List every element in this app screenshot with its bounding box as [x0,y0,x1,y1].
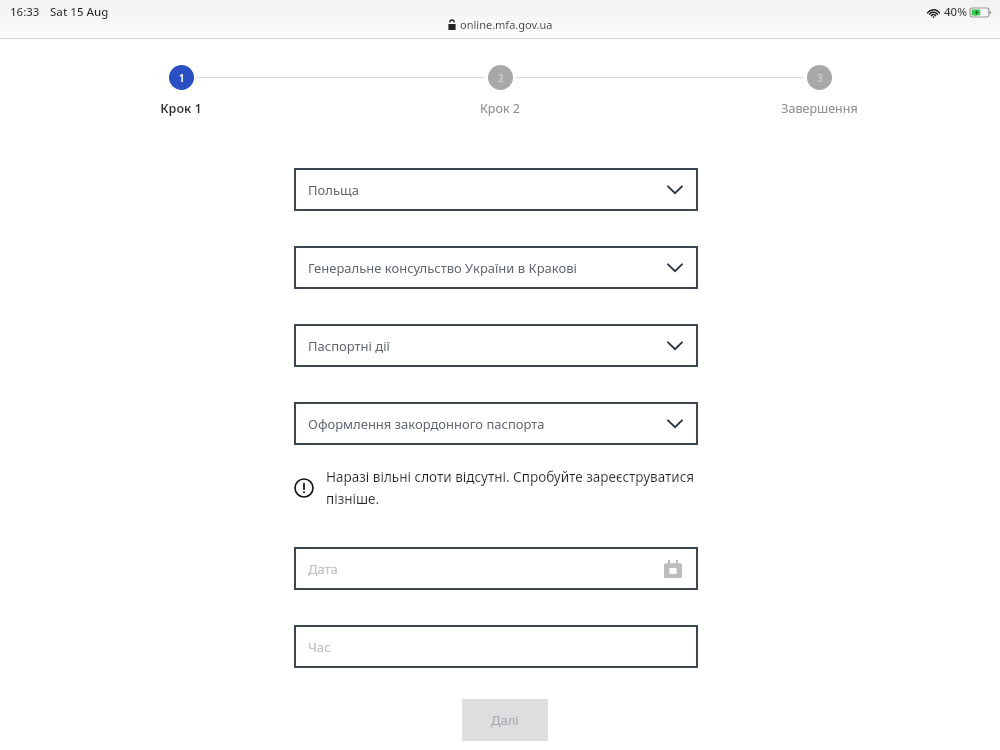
button[interactable]: 2 [440,65,560,117]
staticText: 1 [179,71,185,85]
staticText: Час [308,638,331,656]
staticText: Генеральне консульство України в Кракові [308,259,577,277]
staticText: Наразі вільні слоти відсутні. Спробуйте … [326,468,694,486]
staticText: 16:33 [10,4,40,20]
staticText: пізніше. [326,490,380,508]
staticText: Паспортні дії [308,337,390,355]
button[interactable]: Час [294,625,698,668]
button[interactable]: Дата [294,547,698,590]
staticText: Крок 1 [160,100,202,117]
staticText: Дата [308,560,338,578]
staticText: Польща [308,181,359,199]
button[interactable]: Польща [294,168,698,211]
button[interactable]: Далі [462,699,548,741]
staticText: Далі [491,711,519,729]
staticText: Sat 15 Aug [50,4,109,20]
button[interactable]: Паспортні дії [294,324,698,367]
staticText: online.mfa.gov.ua [460,17,553,32]
button[interactable]: Оформлення закордонного паспорта [294,402,698,445]
button[interactable]: Choose date [664,560,682,578]
button[interactable]: Генеральне консульство України в Кракові [294,246,698,289]
staticText: 3 [817,71,823,85]
staticText: 40% [944,4,967,20]
button[interactable]: 3 [759,65,879,117]
staticText: 2 [498,71,504,85]
staticText: Крок 2 [480,100,520,117]
staticText: Завершення [781,100,858,117]
button[interactable]: 1 [121,65,241,117]
staticText: Оформлення закордонного паспорта [308,415,545,433]
